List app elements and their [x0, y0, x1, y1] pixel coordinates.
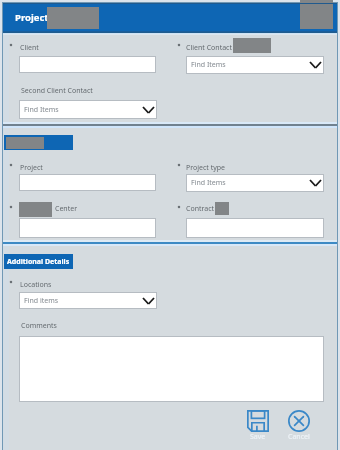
staticText: Find Items [24, 105, 59, 115]
staticText: Project [15, 11, 49, 24]
staticText: Save [250, 432, 266, 442]
staticText: Locations [20, 280, 52, 290]
button[interactable] [19, 174, 156, 191]
staticText: Comments [21, 321, 57, 331]
button[interactable]: Save [240, 410, 275, 442]
button[interactable] [19, 56, 156, 73]
staticText: Center [55, 204, 78, 214]
staticText: Client [20, 43, 39, 53]
staticText: Contract [186, 204, 215, 214]
staticText: Project type [186, 163, 226, 173]
staticText: Cancel [288, 432, 310, 442]
staticText: Find Items [191, 60, 226, 70]
staticText: Find Items [191, 178, 226, 188]
button[interactable]: Find Items [186, 56, 324, 74]
staticText: Additional Details [7, 257, 70, 267]
button[interactable]: Find Items [186, 174, 324, 192]
button[interactable] [19, 336, 324, 402]
staticText: Client Contact [186, 43, 232, 53]
button[interactable]: Cancel [281, 410, 316, 442]
staticText: Find items [24, 296, 59, 306]
button[interactable] [186, 218, 324, 238]
button[interactable] [19, 218, 156, 238]
staticText: Second Client Contact [21, 86, 93, 96]
button[interactable]: Find Items [19, 100, 157, 119]
staticText: Project [20, 163, 43, 173]
button[interactable]: Find items [19, 292, 157, 309]
